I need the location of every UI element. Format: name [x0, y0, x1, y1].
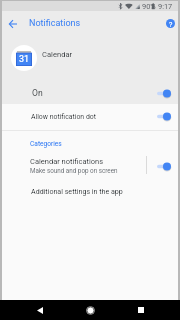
button[interactable] — [157, 161, 171, 172]
staticText: Calendar notifications — [30, 157, 104, 166]
staticText: Allow notification dot — [31, 113, 96, 121]
staticText: Categories — [30, 140, 62, 148]
staticText: On — [32, 88, 43, 98]
staticText: Make sound and pop on screen — [30, 167, 118, 174]
staticText: 90% — [142, 2, 156, 11]
staticText: 9:17 — [158, 2, 173, 11]
staticText: 31 — [19, 54, 30, 65]
staticText: Calendar — [42, 50, 73, 59]
staticText: Additional settings in the app — [31, 187, 123, 195]
staticText: ? — [169, 20, 173, 28]
staticText: Notifications — [29, 18, 81, 29]
button[interactable]: On — [2, 81, 178, 105]
button[interactable]: Navigate up — [3, 14, 22, 33]
button[interactable]: Additional settings in the app — [2, 179, 178, 203]
button[interactable]: Calendar notifications — [2, 151, 146, 178]
button[interactable]: Back — [26, 300, 53, 320]
button[interactable]: 31 — [2, 35, 178, 80]
button[interactable]: Home — [77, 300, 104, 320]
button[interactable]: Help — [163, 16, 177, 30]
button[interactable]: Recent apps — [127, 300, 154, 320]
button[interactable]: Allow notification dot — [2, 104, 178, 129]
